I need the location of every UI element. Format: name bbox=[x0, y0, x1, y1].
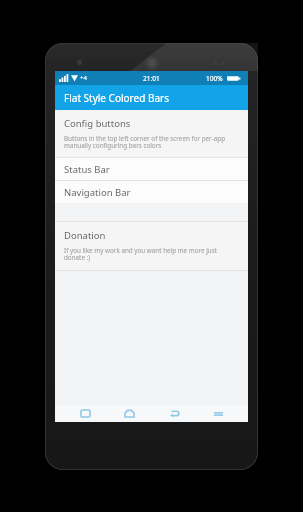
staticText: 21:01 bbox=[143, 74, 160, 83]
staticText: +4 bbox=[80, 74, 87, 82]
staticText: If you like my work and you want help me… bbox=[64, 246, 239, 262]
button[interactable]: Navigation Bar bbox=[55, 181, 248, 203]
staticText: Donation bbox=[64, 229, 106, 242]
staticText: Config buttons bbox=[64, 117, 131, 130]
staticText: 100% bbox=[206, 74, 223, 83]
button[interactable]: Donation bbox=[55, 222, 248, 270]
button[interactable]: Status Bar bbox=[55, 158, 248, 180]
button[interactable]: Config buttons bbox=[55, 110, 248, 157]
button[interactable]: Menu bbox=[203, 405, 233, 422]
button[interactable]: Back bbox=[159, 405, 189, 422]
staticText: Flat Style Colored Bars bbox=[64, 91, 169, 105]
staticText: Status Bar bbox=[64, 163, 110, 176]
button[interactable]: Recents bbox=[70, 405, 100, 422]
button[interactable]: Home bbox=[114, 405, 144, 422]
staticText: Buttons in the top left corner of the sc… bbox=[64, 134, 239, 150]
staticText: Navigation Bar bbox=[64, 186, 131, 199]
